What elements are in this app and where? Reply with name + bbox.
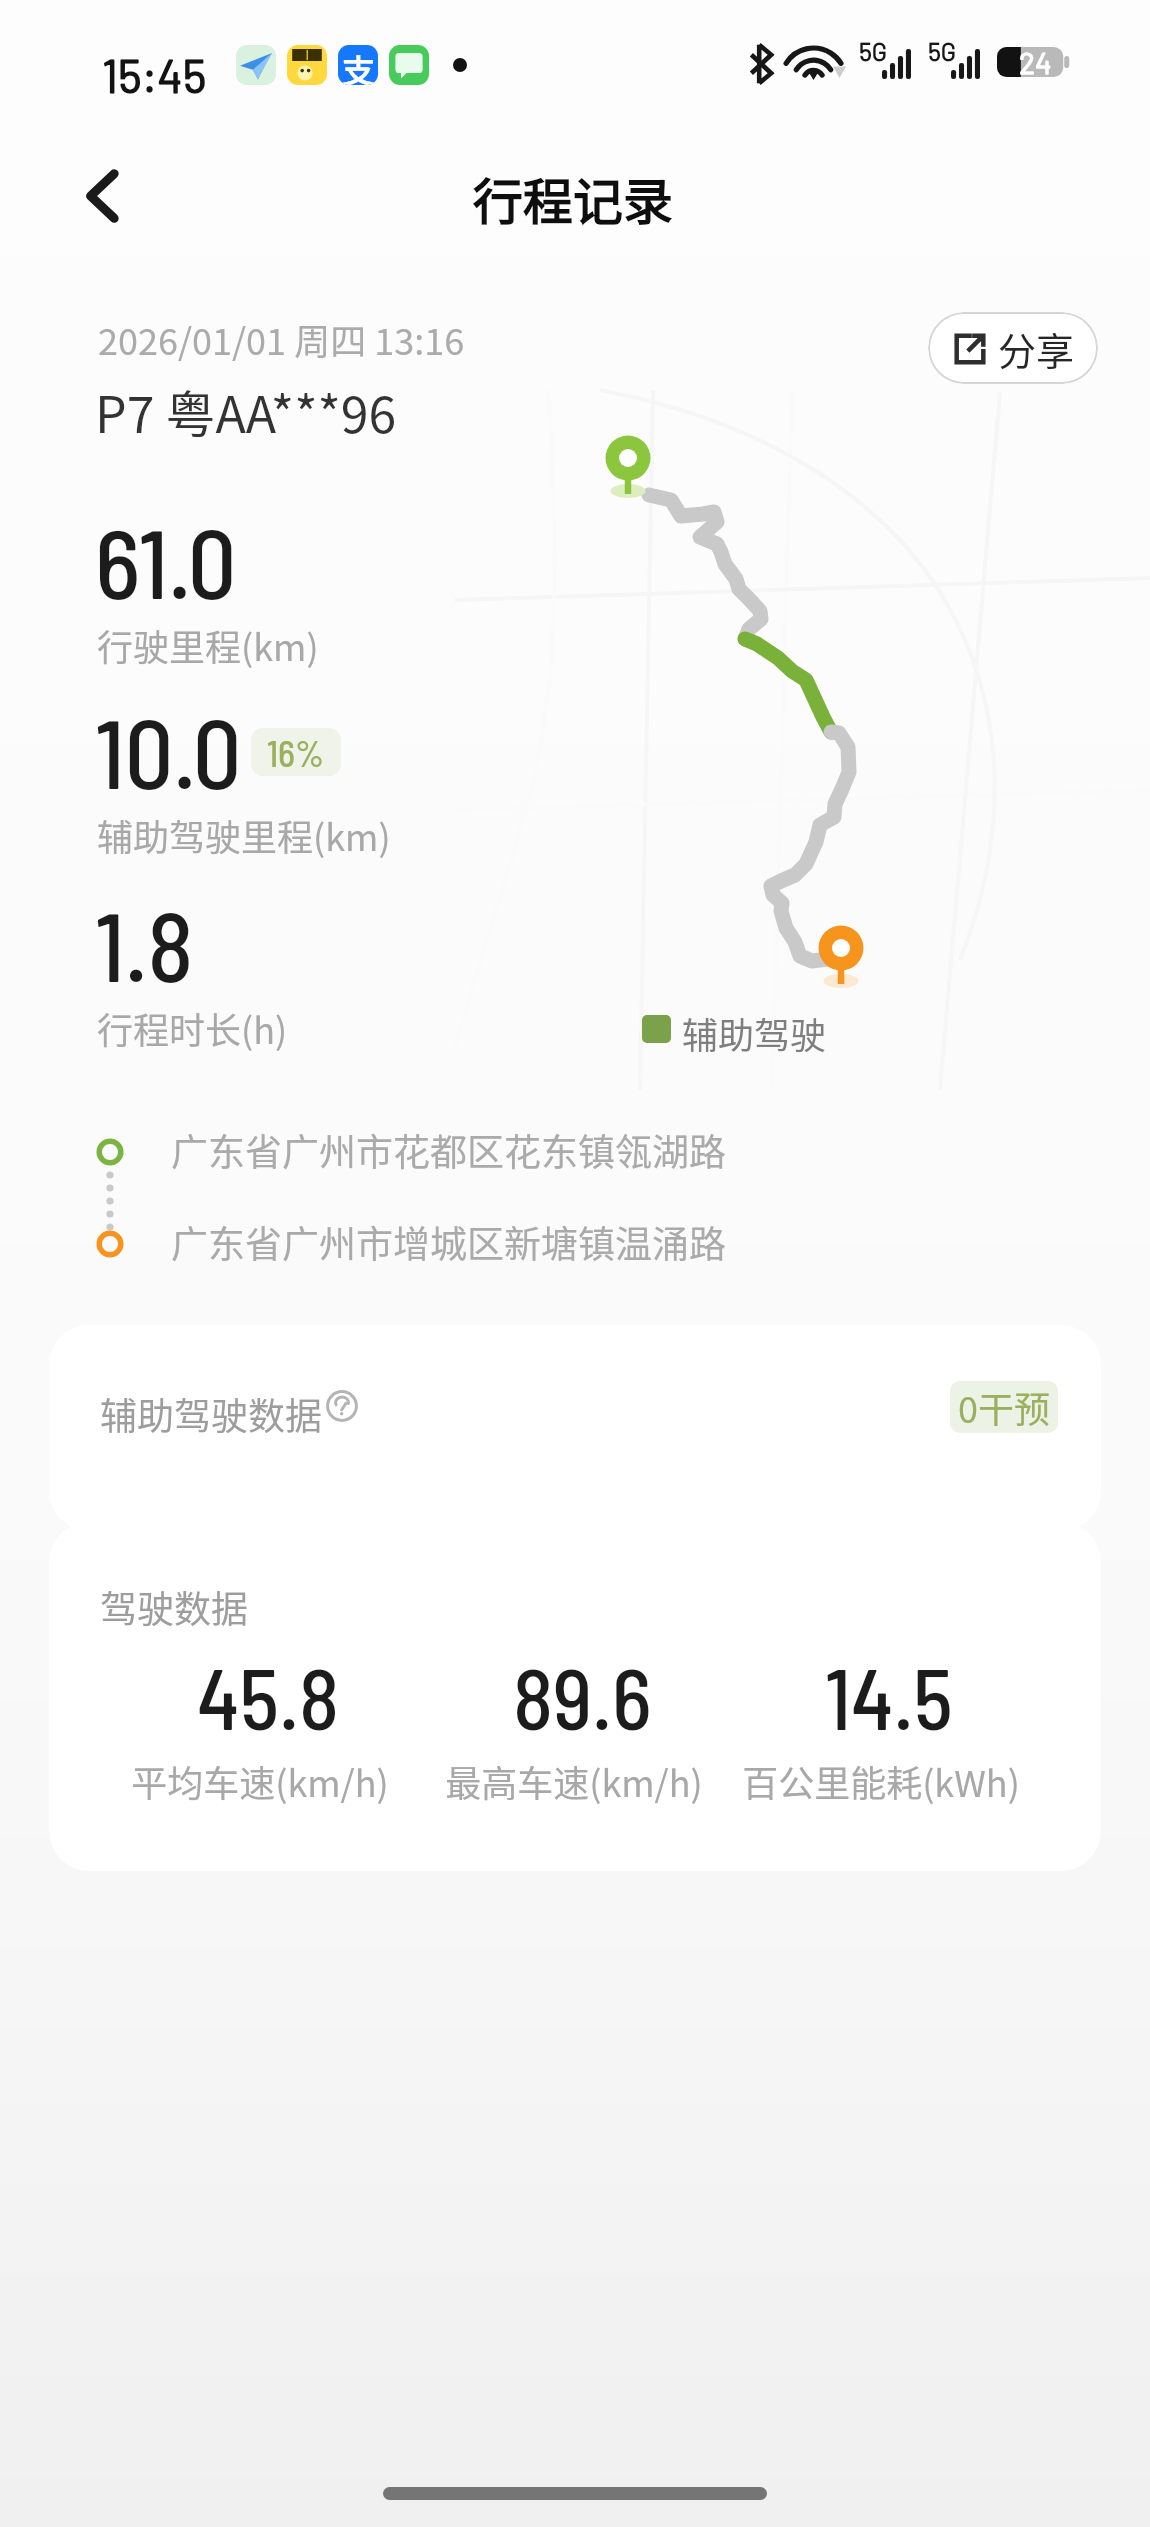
staticText: 5G bbox=[859, 36, 888, 66]
staticText: 10.0 bbox=[95, 693, 242, 808]
staticText: 辅助驾驶 bbox=[682, 1007, 827, 1059]
staticText: 行程时长(h) bbox=[97, 1002, 288, 1054]
staticText: 广东省广州市增城区新塘镇温涌路 bbox=[171, 1215, 726, 1269]
staticText: 45.8 bbox=[197, 1646, 340, 1747]
button[interactable]: Back bbox=[48, 141, 158, 251]
staticText: 16% bbox=[267, 731, 325, 774]
staticText: 平均车速(km/h) bbox=[131, 1755, 389, 1807]
staticText: 辅助驾驶数据 bbox=[100, 1387, 322, 1441]
staticText: 最高车速(km/h) bbox=[445, 1755, 703, 1807]
staticText: 广东省广州市花都区花东镇瓴湖路 bbox=[171, 1123, 726, 1177]
button[interactable]: 驾驶数据 bbox=[49, 1522, 1101, 1871]
button[interactable]: 分享 bbox=[928, 312, 1098, 384]
staticText: 0干预 bbox=[958, 1381, 1050, 1433]
staticText: 1.8 bbox=[95, 886, 194, 1001]
staticText: 支 bbox=[342, 45, 375, 85]
staticText: 2026/01/01 周四 13:16 bbox=[98, 313, 465, 365]
staticText: 辅助驾驶里程(km) bbox=[97, 809, 391, 861]
staticText: 89.6 bbox=[513, 1646, 652, 1747]
staticText: 14.5 bbox=[825, 1646, 953, 1747]
staticText: 15:45 bbox=[102, 47, 207, 102]
staticText: 分享 bbox=[998, 321, 1075, 376]
staticText: 行驶里程(km) bbox=[97, 619, 319, 671]
staticText: 驾驶数据 bbox=[100, 1580, 248, 1634]
staticText: 行程记录 bbox=[473, 162, 673, 234]
staticText: 5G bbox=[928, 36, 957, 66]
staticText: 24 bbox=[1019, 44, 1052, 80]
staticText: P7 粤AA***96 bbox=[95, 375, 397, 447]
button[interactable]: 辅助驾驶数据 bbox=[49, 1325, 1101, 1531]
staticText: 61.0 bbox=[95, 503, 237, 618]
staticText: 百公里能耗(kWh) bbox=[742, 1755, 1020, 1807]
